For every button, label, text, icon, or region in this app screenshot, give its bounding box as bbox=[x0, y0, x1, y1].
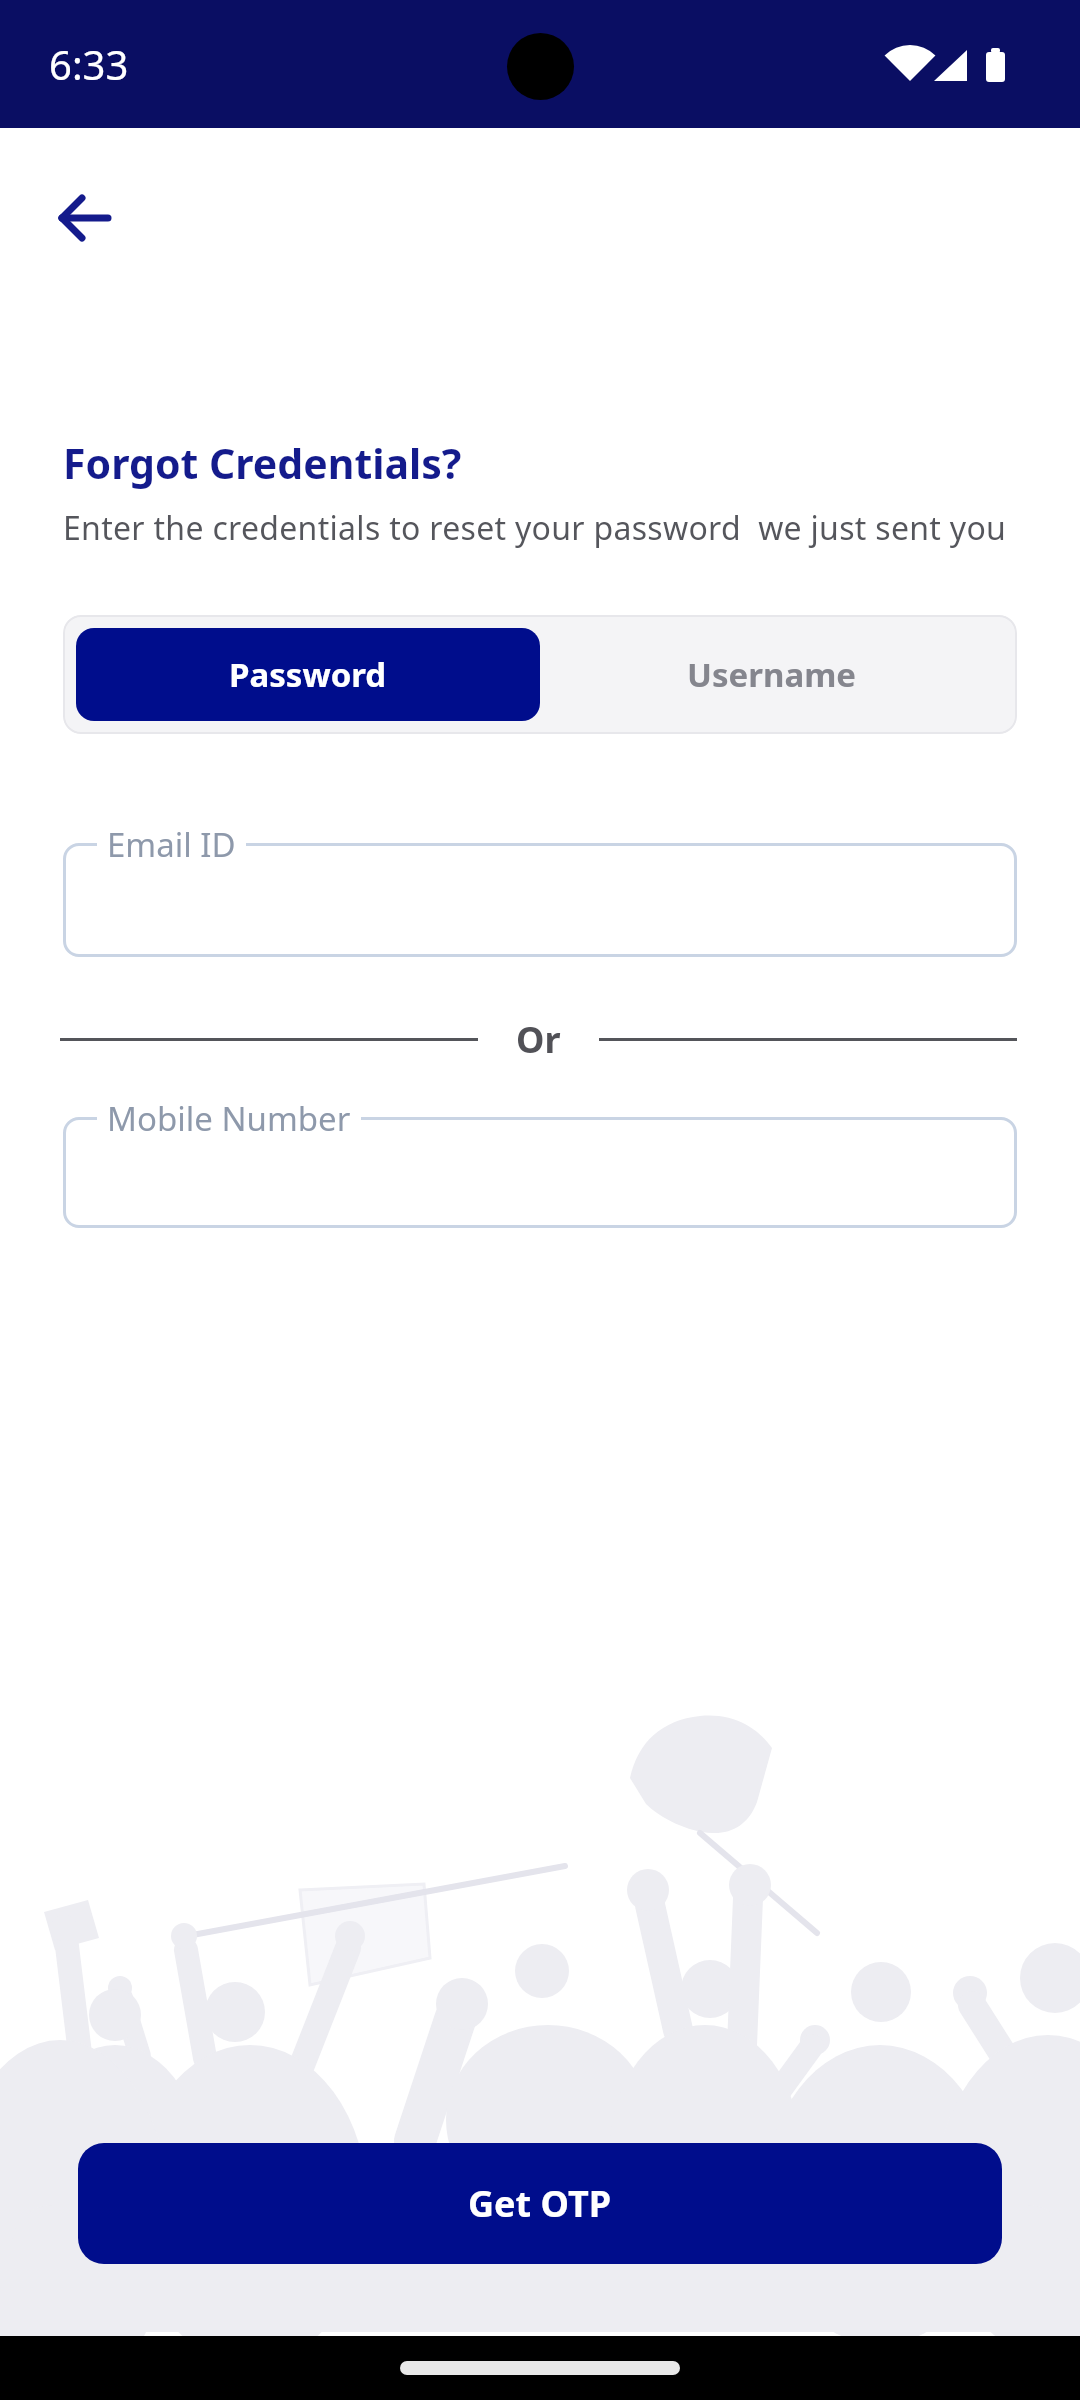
button[interactable]: Get OTP bbox=[78, 2143, 1002, 2264]
staticText: Or bbox=[516, 1015, 561, 1064]
staticText: Username bbox=[687, 652, 857, 697]
staticText: Forgot Credentials? bbox=[63, 435, 462, 491]
staticText: Email ID bbox=[107, 822, 236, 867]
button[interactable]: Password bbox=[76, 628, 540, 721]
button[interactable]: Username bbox=[540, 628, 1004, 721]
staticText: Get OTP bbox=[468, 2179, 612, 2228]
button[interactable] bbox=[63, 1117, 1017, 1228]
staticText: 6:33 bbox=[49, 37, 129, 91]
staticText: Password bbox=[229, 652, 387, 697]
staticText: Enter the credentials to reset your pass… bbox=[63, 506, 1007, 550]
button[interactable] bbox=[63, 843, 1017, 957]
staticText: Mobile Number bbox=[107, 1096, 351, 1141]
button[interactable] bbox=[56, 190, 116, 246]
